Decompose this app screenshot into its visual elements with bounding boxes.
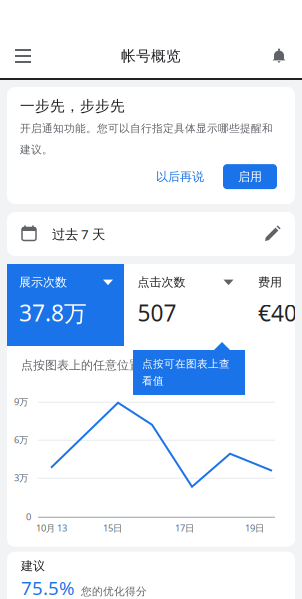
- staticText: 37.8万: [19, 298, 87, 328]
- button[interactable]: Notifications: [256, 34, 302, 78]
- staticText: 帐号概览: [121, 47, 181, 65]
- staticText: 0: [26, 510, 31, 523]
- staticText: 费用: [258, 275, 282, 290]
- staticText: 15日: [103, 522, 122, 534]
- button[interactable]: 费用: [246, 264, 302, 346]
- staticText: 以后再说: [156, 169, 204, 184]
- staticText: 6万: [14, 433, 28, 446]
- staticText: 建议: [21, 559, 45, 573]
- button[interactable]: Menu: [0, 34, 46, 78]
- staticText: 17日: [175, 522, 194, 534]
- staticText: 看值: [142, 374, 164, 388]
- staticText: 点击次数: [137, 275, 185, 290]
- staticText: 点按图表上的任意位置: [21, 358, 141, 373]
- button[interactable]: 过去 7 天: [7, 212, 295, 256]
- staticText: 19日: [245, 522, 264, 534]
- staticText: 点按可在图表上查: [142, 357, 230, 370]
- staticText: 10月 13: [36, 522, 67, 534]
- staticText: 建议。: [20, 143, 53, 156]
- button[interactable]: 启用: [223, 164, 277, 189]
- staticText: 过去 7 天: [52, 225, 105, 243]
- button[interactable]: 以后再说: [145, 163, 215, 190]
- staticText: 75.5%: [21, 575, 75, 599]
- staticText: 507: [137, 298, 176, 328]
- staticText: 展示次数: [19, 275, 67, 290]
- staticText: 3万: [14, 471, 28, 484]
- staticText: 您的优化得分: [81, 585, 147, 598]
- button[interactable]: 展示次数: [7, 264, 124, 346]
- staticText: 一步先，步步先: [20, 97, 125, 115]
- staticText: 启用: [238, 169, 262, 184]
- staticText: €40: [258, 298, 297, 328]
- staticText: 9万: [14, 395, 28, 408]
- button[interactable]: 点击次数: [125, 264, 244, 346]
- staticText: 开启通知功能。您可以自行指定具体显示哪些提醒和: [20, 122, 273, 135]
